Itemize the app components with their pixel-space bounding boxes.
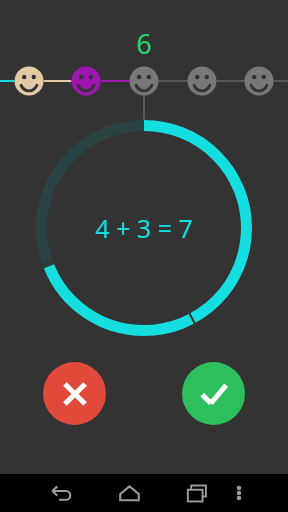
- button[interactable]: Back: [42, 474, 80, 512]
- staticText: 4 + 3 = 7: [95, 211, 193, 245]
- button[interactable]: Recent apps: [178, 474, 216, 512]
- button[interactable]: Home: [110, 474, 148, 512]
- staticText: 6: [136, 25, 152, 62]
- button[interactable]: Correct answer: [182, 362, 245, 425]
- button[interactable]: More options: [226, 480, 252, 506]
- button[interactable]: Wrong answer: [43, 362, 106, 425]
